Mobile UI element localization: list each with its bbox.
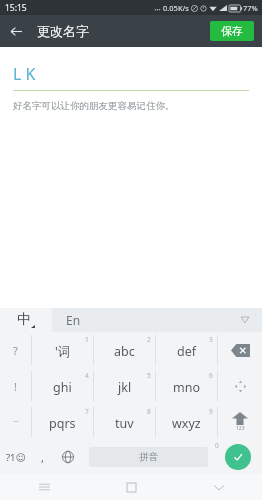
staticText: 6 <box>209 371 213 380</box>
staticText: 5 <box>147 371 151 380</box>
staticText: 8 <box>147 407 151 416</box>
staticText: ghi <box>53 379 72 396</box>
staticText: , <box>41 450 44 465</box>
button[interactable]: 9 <box>156 404 217 440</box>
staticText: pqrs <box>49 415 76 432</box>
staticText: 7 <box>85 407 89 416</box>
staticText: 123 <box>236 425 245 432</box>
button[interactable]: L K <box>13 63 249 90</box>
staticText: 0.05K/s <box>163 3 189 13</box>
button[interactable]: Confirm <box>225 444 251 470</box>
button[interactable]: Collapse keyboard <box>238 313 252 327</box>
button[interactable]: Cursor pad <box>218 368 262 404</box>
button[interactable]: 4 <box>32 368 93 404</box>
button[interactable]: 8 <box>94 404 155 440</box>
staticText: '词 <box>55 343 71 360</box>
staticText: mno <box>173 379 200 396</box>
button[interactable]: , <box>31 440 53 474</box>
button[interactable]: ?1☺ <box>0 440 31 474</box>
button[interactable]: 1 <box>32 332 93 368</box>
button[interactable]: Back <box>3 18 29 44</box>
button[interactable]: 7 <box>32 404 93 440</box>
staticText: 2 <box>147 335 151 344</box>
button[interactable]: Shift to numbers <box>218 404 262 440</box>
staticText: ?1☺ <box>6 451 26 464</box>
staticText: abc <box>114 343 135 360</box>
button[interactable]: En <box>52 308 262 332</box>
button[interactable]: 拼音 <box>89 447 208 467</box>
staticText: 4 <box>85 371 89 380</box>
staticText: ··· <box>13 417 19 427</box>
staticText: 0 <box>215 441 219 450</box>
button[interactable]: 保存 <box>210 21 254 41</box>
staticText: L K <box>13 63 36 85</box>
button[interactable]: Back <box>175 474 262 500</box>
staticText: 77% <box>243 3 258 13</box>
staticText: En <box>66 312 81 328</box>
button[interactable]: 中 <box>0 308 52 332</box>
staticText: tuv <box>115 415 134 432</box>
button[interactable]: 2 <box>94 332 155 368</box>
staticText: 好名字可以让你的朋友更容易记住你。 <box>13 100 175 112</box>
staticText: 更改名字 <box>37 23 89 39</box>
staticText: jkl <box>118 379 132 396</box>
staticText: ! <box>14 379 17 394</box>
staticText: 9 <box>209 407 213 416</box>
staticText: ? <box>13 343 18 358</box>
staticText: wxyz <box>172 415 201 432</box>
button[interactable]: 5 <box>94 368 155 404</box>
staticText: 3 <box>209 335 213 344</box>
button[interactable]: ··· <box>0 404 31 440</box>
staticText: 15:15 <box>5 2 27 14</box>
staticText: 1 <box>85 335 89 344</box>
staticText: def <box>177 343 197 360</box>
button[interactable]: ! <box>0 368 31 404</box>
staticText: 拼音 <box>139 451 158 463</box>
button[interactable]: Home <box>88 474 175 500</box>
button[interactable]: Menu <box>0 474 88 500</box>
staticText: 中 <box>17 311 31 329</box>
button[interactable]: 3 <box>156 332 217 368</box>
button[interactable]: 6 <box>156 368 217 404</box>
staticText: 保存 <box>221 24 243 38</box>
button[interactable]: ? <box>0 332 31 368</box>
button[interactable]: Backspace <box>218 332 262 368</box>
button[interactable]: Switch language <box>53 440 83 474</box>
